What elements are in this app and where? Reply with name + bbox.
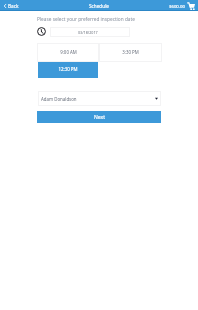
button[interactable]: Adam Donaldson (38, 91, 161, 106)
staticText: $600.00 (169, 3, 185, 9)
staticText: Back (8, 3, 19, 9)
button[interactable]: Back (4, 0, 19, 11)
button[interactable]: 03/18/2017 (50, 27, 130, 37)
staticText: 9:00 AM (60, 49, 77, 55)
staticText: Adam Donaldson (41, 96, 77, 102)
staticText: 03/18/2017 (78, 30, 98, 35)
button[interactable]: 12:30 PM (38, 62, 98, 78)
staticText: Next (94, 114, 105, 121)
staticText: Please select your preferred inspection … (37, 16, 135, 22)
staticText: Schedule (89, 3, 109, 9)
button[interactable]: 9:00 AM (37, 43, 99, 62)
staticText: 12:30 PM (58, 66, 78, 72)
staticText: 3:30 PM (122, 49, 139, 55)
button[interactable]: Cart (169, 0, 195, 11)
button[interactable]: 3:30 PM (99, 43, 162, 62)
button[interactable]: Next (37, 111, 161, 123)
